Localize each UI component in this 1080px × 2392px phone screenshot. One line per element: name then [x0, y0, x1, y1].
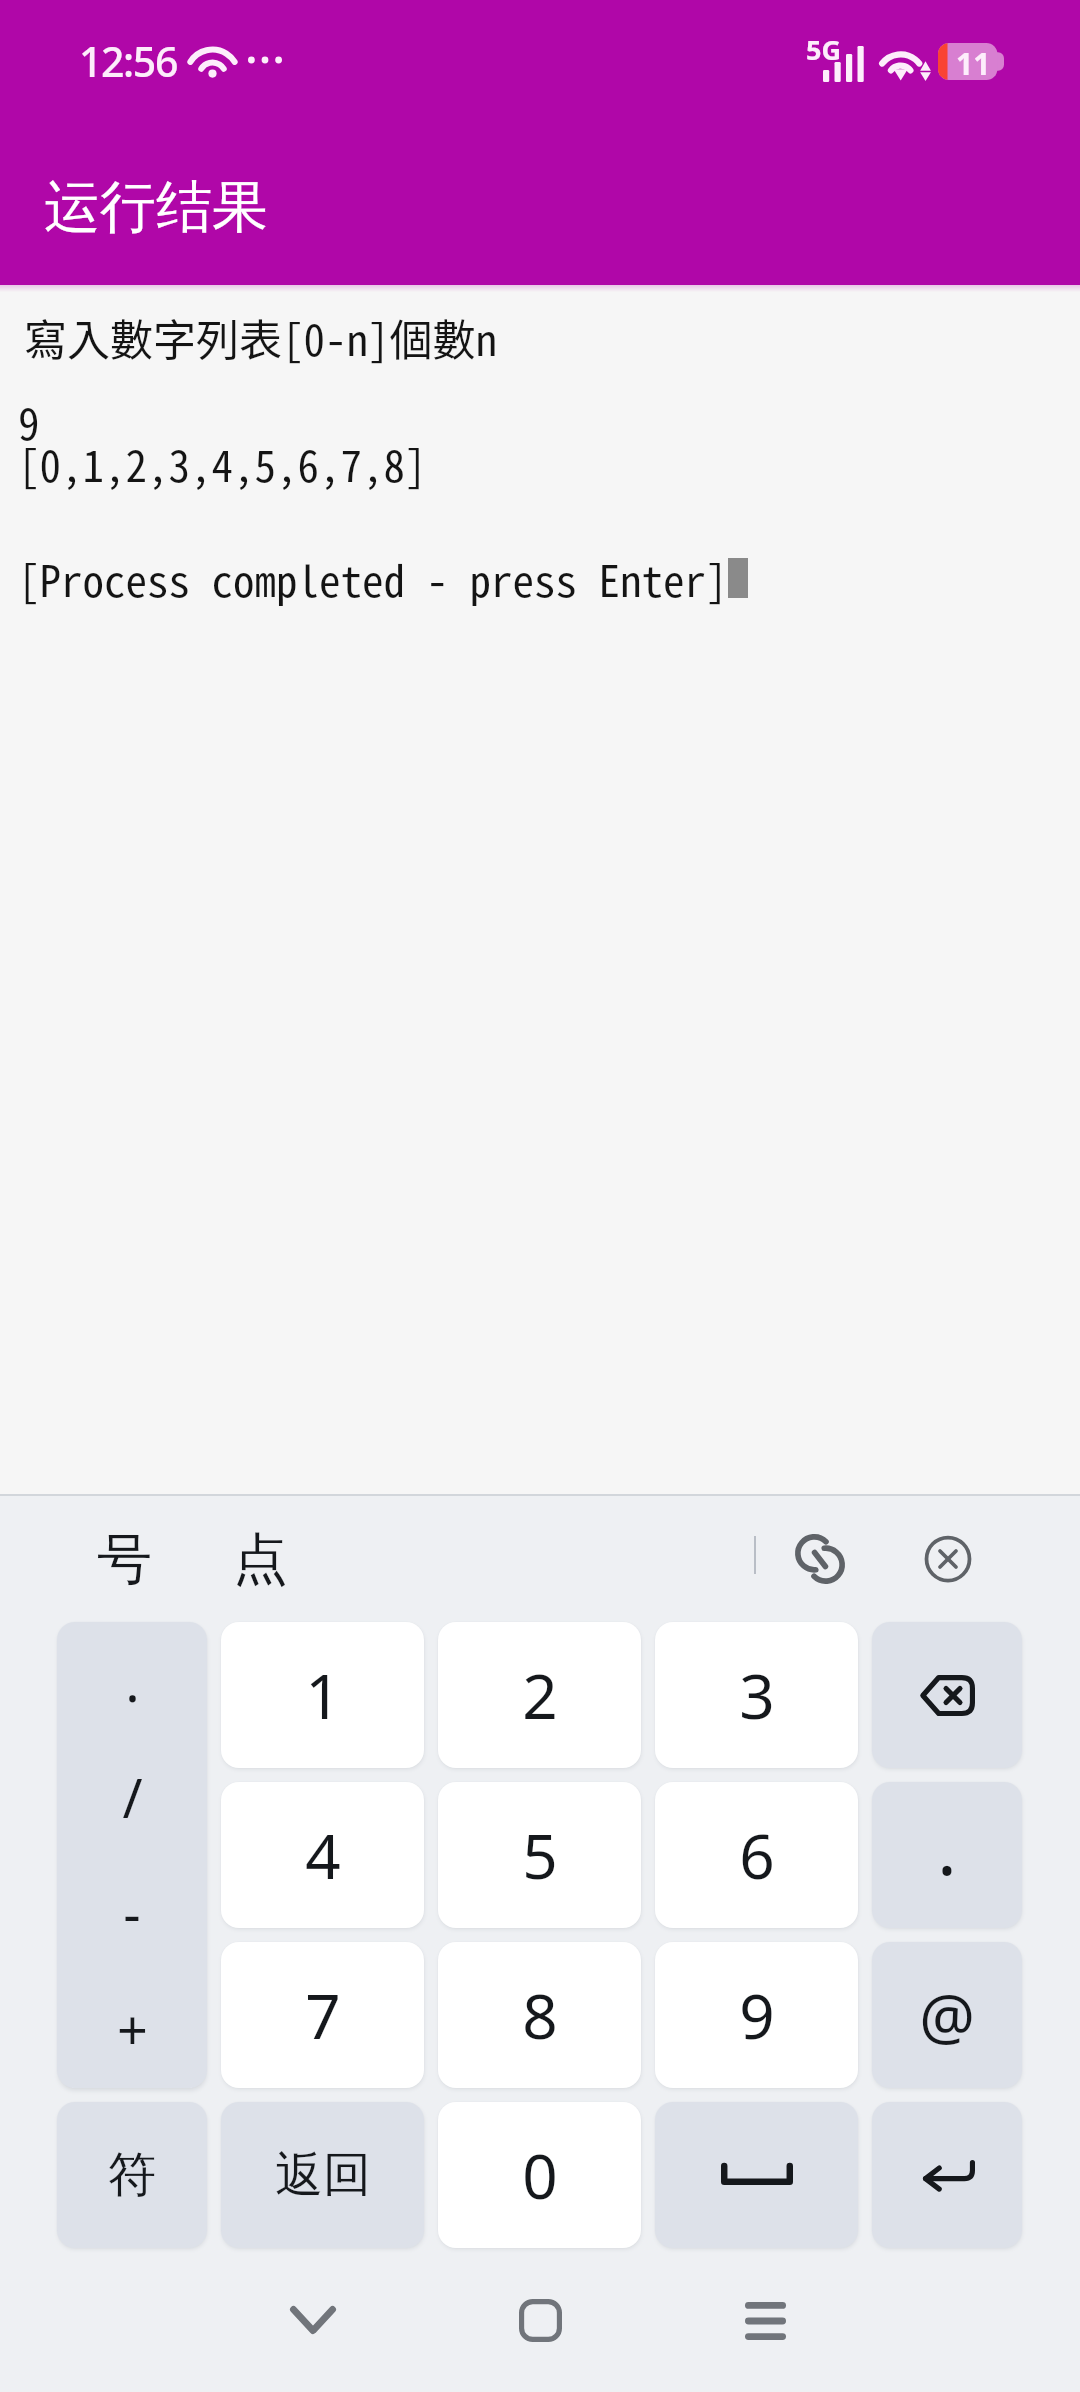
button[interactable]: 符: [57, 2102, 207, 2248]
button[interactable]: 7: [221, 1942, 424, 2088]
staticText: 5: [522, 1813, 558, 1897]
staticText: 返回: [275, 2145, 371, 2205]
button[interactable]: 返回: [221, 2102, 424, 2248]
staticText: 运行结果: [44, 172, 268, 243]
button[interactable]: 6: [655, 1782, 858, 1928]
button[interactable]: 0: [438, 2102, 641, 2248]
button[interactable]: Backspace: [872, 1622, 1022, 1768]
button[interactable]: 5: [438, 1782, 641, 1928]
button[interactable]: Enter: [872, 2102, 1022, 2248]
staticText: 9 [0,1,2,3,4,5,6,7,8]: [18, 390, 427, 494]
button[interactable]: .: [872, 1782, 1022, 1928]
button[interactable]: Space: [655, 2102, 858, 2248]
staticText: 6: [739, 1813, 775, 1897]
staticText: 9: [739, 1973, 775, 2057]
staticText: 点: [233, 1525, 288, 1594]
staticText: /: [122, 1760, 143, 1834]
staticText: +: [117, 1992, 148, 2066]
staticText: 11: [956, 43, 991, 80]
staticText: 号: [97, 1525, 152, 1594]
button[interactable]: Hide keyboard: [243, 2270, 383, 2370]
staticText: -: [123, 1876, 141, 1950]
button[interactable]: .: [57, 1622, 207, 2088]
staticText: 8: [522, 1973, 558, 2057]
staticText: 5G: [806, 31, 841, 68]
staticText: @: [919, 1973, 975, 2057]
button[interactable]: 1: [221, 1622, 424, 1768]
button[interactable]: 8: [438, 1942, 641, 2088]
staticText: 3: [739, 1653, 775, 1737]
button[interactable]: 号: [74, 1496, 174, 1622]
button[interactable]: 点: [210, 1496, 310, 1622]
staticText: 符: [108, 2145, 156, 2205]
button[interactable]: @: [872, 1942, 1022, 2088]
staticText: 4: [305, 1813, 341, 1897]
staticText: 7: [305, 1973, 341, 2057]
button[interactable]: Clipboard: [766, 1496, 874, 1622]
button[interactable]: 2: [438, 1622, 641, 1768]
button[interactable]: Recent apps: [695, 2271, 835, 2371]
button[interactable]: 3: [655, 1622, 858, 1768]
button[interactable]: 9: [655, 1942, 858, 2088]
staticText: 12:56: [79, 33, 177, 89]
staticText: .: [937, 1796, 957, 1897]
button[interactable]: 4: [221, 1782, 424, 1928]
staticText: 1: [305, 1653, 341, 1737]
staticText: 2: [522, 1653, 558, 1737]
staticText: 0: [522, 2133, 558, 2217]
staticText: 寫入數字列表[0-n]個數n: [24, 306, 497, 368]
button[interactable]: Home: [470, 2270, 610, 2370]
button[interactable]: Close keyboard: [894, 1496, 1002, 1622]
staticText: .: [125, 1644, 140, 1718]
staticText: [Process completed - press Enter]: [18, 547, 728, 609]
